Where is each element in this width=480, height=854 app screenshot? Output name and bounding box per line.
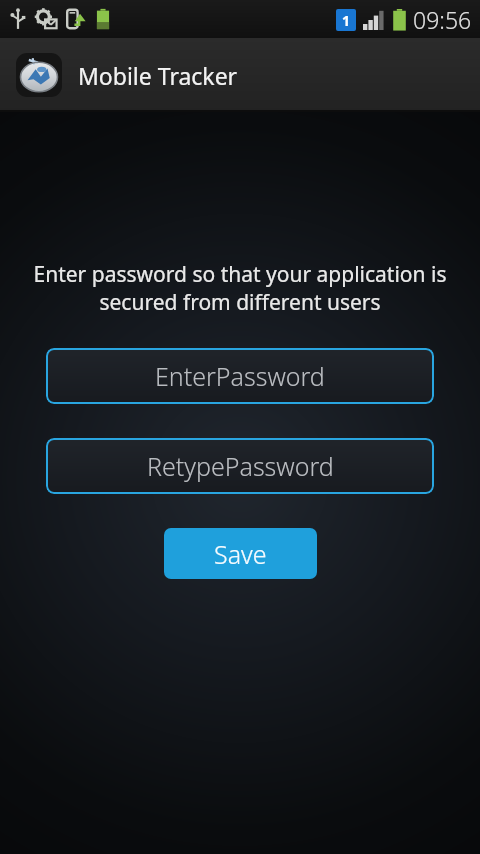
staticText: EnterPassword	[155, 359, 325, 393]
staticText: 09:56	[413, 4, 472, 35]
button[interactable]: RetypePassword	[46, 438, 434, 494]
staticText: Save	[214, 537, 267, 571]
staticText: RetypePassword	[147, 449, 334, 483]
button[interactable]: Save	[164, 528, 317, 579]
button[interactable]: EnterPassword	[46, 348, 434, 404]
staticText: Mobile Tracker	[78, 60, 238, 91]
staticText: 1	[342, 11, 351, 30]
staticText: Enter password so that your application …	[12, 260, 468, 316]
